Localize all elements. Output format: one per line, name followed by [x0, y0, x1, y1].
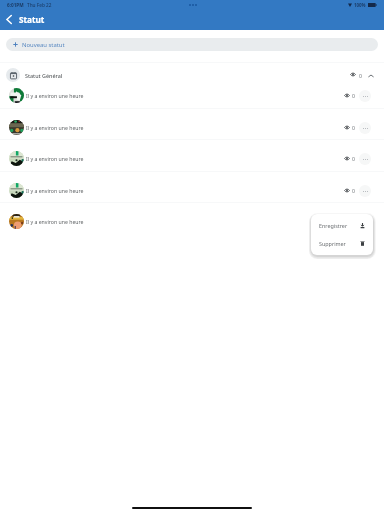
- staticText: 0: [352, 92, 355, 99]
- button[interactable]: Back: [0, 11, 17, 28]
- staticText: Statut Général: [25, 72, 63, 79]
- button[interactable]: Il y a environ une heure: [0, 120, 384, 135]
- staticText: 0: [352, 124, 355, 131]
- staticText: Enregistrer: [319, 222, 348, 229]
- staticText: Thu Feb 22: [27, 2, 52, 8]
- staticText: Il y a environ une heure: [26, 155, 84, 162]
- button[interactable]: Il y a environ une heure: [0, 88, 384, 103]
- button[interactable]: Collapse: [365, 70, 376, 81]
- staticText: Il y a environ une heure: [26, 92, 84, 99]
- button[interactable]: More options: [359, 122, 371, 134]
- staticText: 100%: [354, 2, 366, 8]
- staticText: 6:01PM: [7, 2, 24, 8]
- button[interactable]: More options: [359, 90, 371, 102]
- staticText: Supprimer: [319, 240, 346, 247]
- button[interactable]: Statut Général: [0, 62, 384, 88]
- staticText: 0: [352, 187, 355, 194]
- staticText: 0: [359, 72, 362, 79]
- button[interactable]: More options: [359, 153, 371, 165]
- button[interactable]: More options: [359, 185, 371, 197]
- button[interactable]: Il y a environ une heure: [0, 183, 384, 198]
- staticText: 0: [352, 155, 355, 162]
- staticText: Nouveau statut: [22, 41, 65, 49]
- staticText: Statut: [19, 14, 45, 25]
- button[interactable]: Il y a environ une heure: [0, 151, 384, 166]
- staticText: Il y a environ une heure: [26, 124, 84, 131]
- button[interactable]: Il y a environ une heure: [0, 214, 384, 229]
- staticText: Il y a environ une heure: [26, 187, 84, 194]
- staticText: Il y a environ une heure: [26, 218, 84, 225]
- button[interactable]: Supprimer: [311, 234, 373, 252]
- button[interactable]: Enregistrer: [311, 216, 373, 234]
- button[interactable]: More options: [359, 216, 371, 228]
- button[interactable]: Nouveau statut: [6, 38, 378, 51]
